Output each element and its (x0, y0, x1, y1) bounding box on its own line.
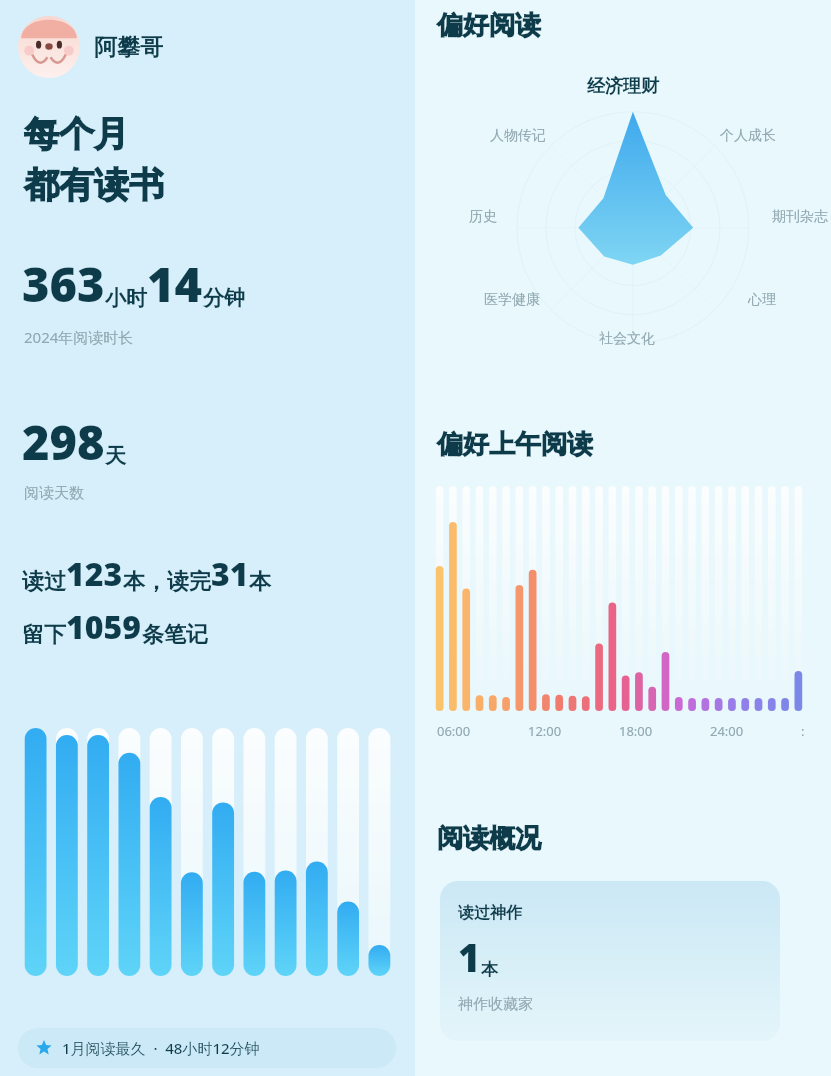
staticText: 阿攀哥 (94, 33, 163, 62)
button[interactable]: 1月阅读最久 · 48小时12分钟 (18, 1028, 396, 1068)
staticText: 分钟 (203, 285, 245, 311)
staticText: 本 (481, 959, 498, 980)
staticText: 363 (22, 252, 105, 316)
button[interactable]: 读过神作 (440, 881, 780, 1041)
button[interactable]: 用户头像 (18, 16, 163, 78)
staticText: 阅读概况 (437, 822, 541, 855)
staticText: 2024年阅读时长 (24, 327, 134, 347)
staticText: 小时 (105, 285, 147, 311)
staticText: 偏好阅读 (437, 9, 541, 42)
staticText: : (801, 722, 805, 740)
staticText: 18:00 (619, 722, 653, 740)
other: 用户头像 (18, 16, 80, 78)
staticText: 期刊杂志 (772, 208, 828, 226)
staticText: 经济理财 (437, 75, 809, 98)
staticText: 读过神作 (458, 903, 522, 923)
staticText: 条笔记 (142, 621, 208, 649)
staticText: 1059 (66, 605, 142, 649)
staticText: 1 (458, 931, 481, 983)
staticText: 天 (105, 443, 126, 469)
staticText: 社会文化 (599, 330, 655, 348)
staticText: 人物传记 (490, 127, 546, 145)
staticText: 06:00 (437, 722, 471, 740)
staticText: 每个月 (24, 112, 129, 156)
staticText: 留下 (22, 621, 66, 649)
staticText: 阅读天数 (24, 484, 84, 503)
staticText: 偏好上午阅读 (437, 428, 593, 461)
staticText: 12:00 (528, 722, 562, 740)
staticText: 医学健康 (484, 291, 540, 309)
staticText: 298 (22, 410, 105, 474)
staticText: 24:00 (710, 722, 744, 740)
staticText: 历史 (469, 208, 497, 226)
staticText: 心理 (748, 291, 776, 309)
staticText: 本，读完 (123, 568, 211, 596)
staticText: 123 (66, 552, 123, 596)
staticText: 读过 (22, 568, 66, 596)
staticText: 神作收藏家 (458, 995, 533, 1014)
staticText: 14 (147, 252, 203, 316)
staticText: 本 (249, 568, 271, 596)
staticText: 个人成长 (720, 127, 776, 145)
staticText: 31 (211, 552, 249, 596)
staticText: 都有读书 (24, 163, 164, 207)
staticText: 1月阅读最久 · 48小时12分钟 (62, 1038, 260, 1058)
